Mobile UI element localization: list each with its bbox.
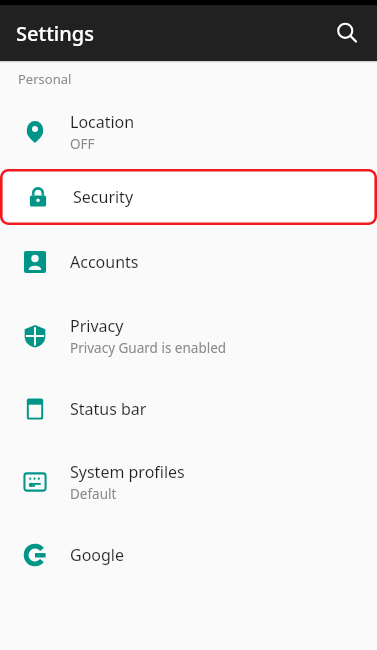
staticText: OFF [70, 135, 95, 153]
staticText: Location [70, 111, 135, 133]
staticText: Status bar [70, 398, 147, 420]
staticText: Google [70, 544, 125, 566]
staticText: Settings [16, 20, 94, 47]
button[interactable]: Security [3, 170, 374, 224]
staticText: Default [70, 485, 117, 503]
button[interactable]: Accounts [0, 225, 377, 299]
button[interactable]: Google [0, 518, 377, 591]
staticText: Privacy [70, 315, 124, 337]
button[interactable]: Search [325, 11, 369, 55]
staticText: Privacy Guard is enabled [70, 339, 227, 357]
staticText: Personal [18, 70, 72, 88]
staticText: System profiles [70, 461, 185, 483]
button[interactable]: System profiles [0, 445, 377, 518]
button[interactable]: Location [0, 95, 377, 169]
button[interactable]: Privacy [0, 299, 377, 372]
staticText: Security [73, 186, 134, 208]
staticText: Accounts [70, 251, 139, 273]
button[interactable]: Status bar [0, 372, 377, 445]
